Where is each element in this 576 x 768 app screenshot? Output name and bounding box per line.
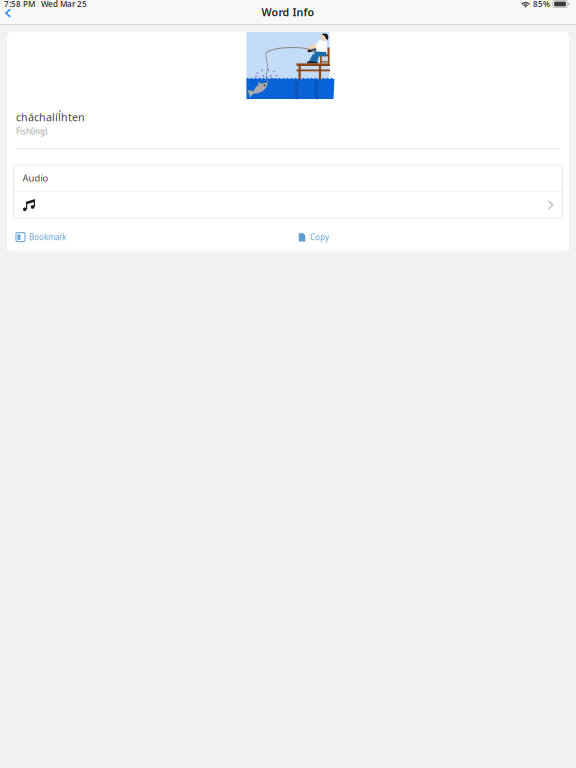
staticText: Word Info: [261, 5, 314, 19]
button[interactable]: Back: [0, 7, 20, 19]
staticText: 85%: [531, 0, 552, 9]
staticText: Audio: [22, 172, 48, 184]
button[interactable]: [13, 192, 562, 218]
staticText: cháchalíĺhten: [16, 110, 85, 124]
staticText: Wed Mar 25: [35, 0, 87, 9]
staticText: Fish(ing): [16, 126, 47, 137]
button[interactable]: Copy: [298, 229, 418, 245]
staticText: Bookmark: [29, 232, 66, 242]
staticText: 7:58 PM: [4, 0, 35, 9]
button[interactable]: Bookmark: [16, 229, 298, 245]
staticText: Copy: [310, 232, 329, 242]
